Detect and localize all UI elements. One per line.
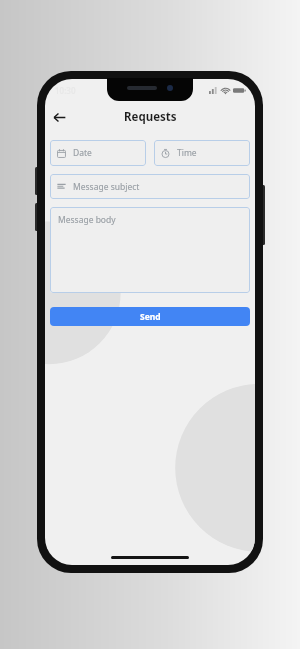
staticText: Time <box>177 147 197 159</box>
button[interactable]: Send <box>50 307 250 326</box>
button[interactable]: Time <box>154 140 250 166</box>
staticText: 10:30 <box>55 85 76 96</box>
button[interactable]: Message body <box>50 207 250 293</box>
staticText: Message body <box>58 214 116 226</box>
button[interactable]: Back <box>45 103 73 131</box>
staticText: Send <box>140 311 161 323</box>
button[interactable]: Date <box>50 140 146 166</box>
button[interactable]: Message subject <box>50 174 250 199</box>
staticText: Date <box>73 147 92 159</box>
staticText: Requests <box>124 109 177 125</box>
staticText: Message subject <box>73 181 140 193</box>
